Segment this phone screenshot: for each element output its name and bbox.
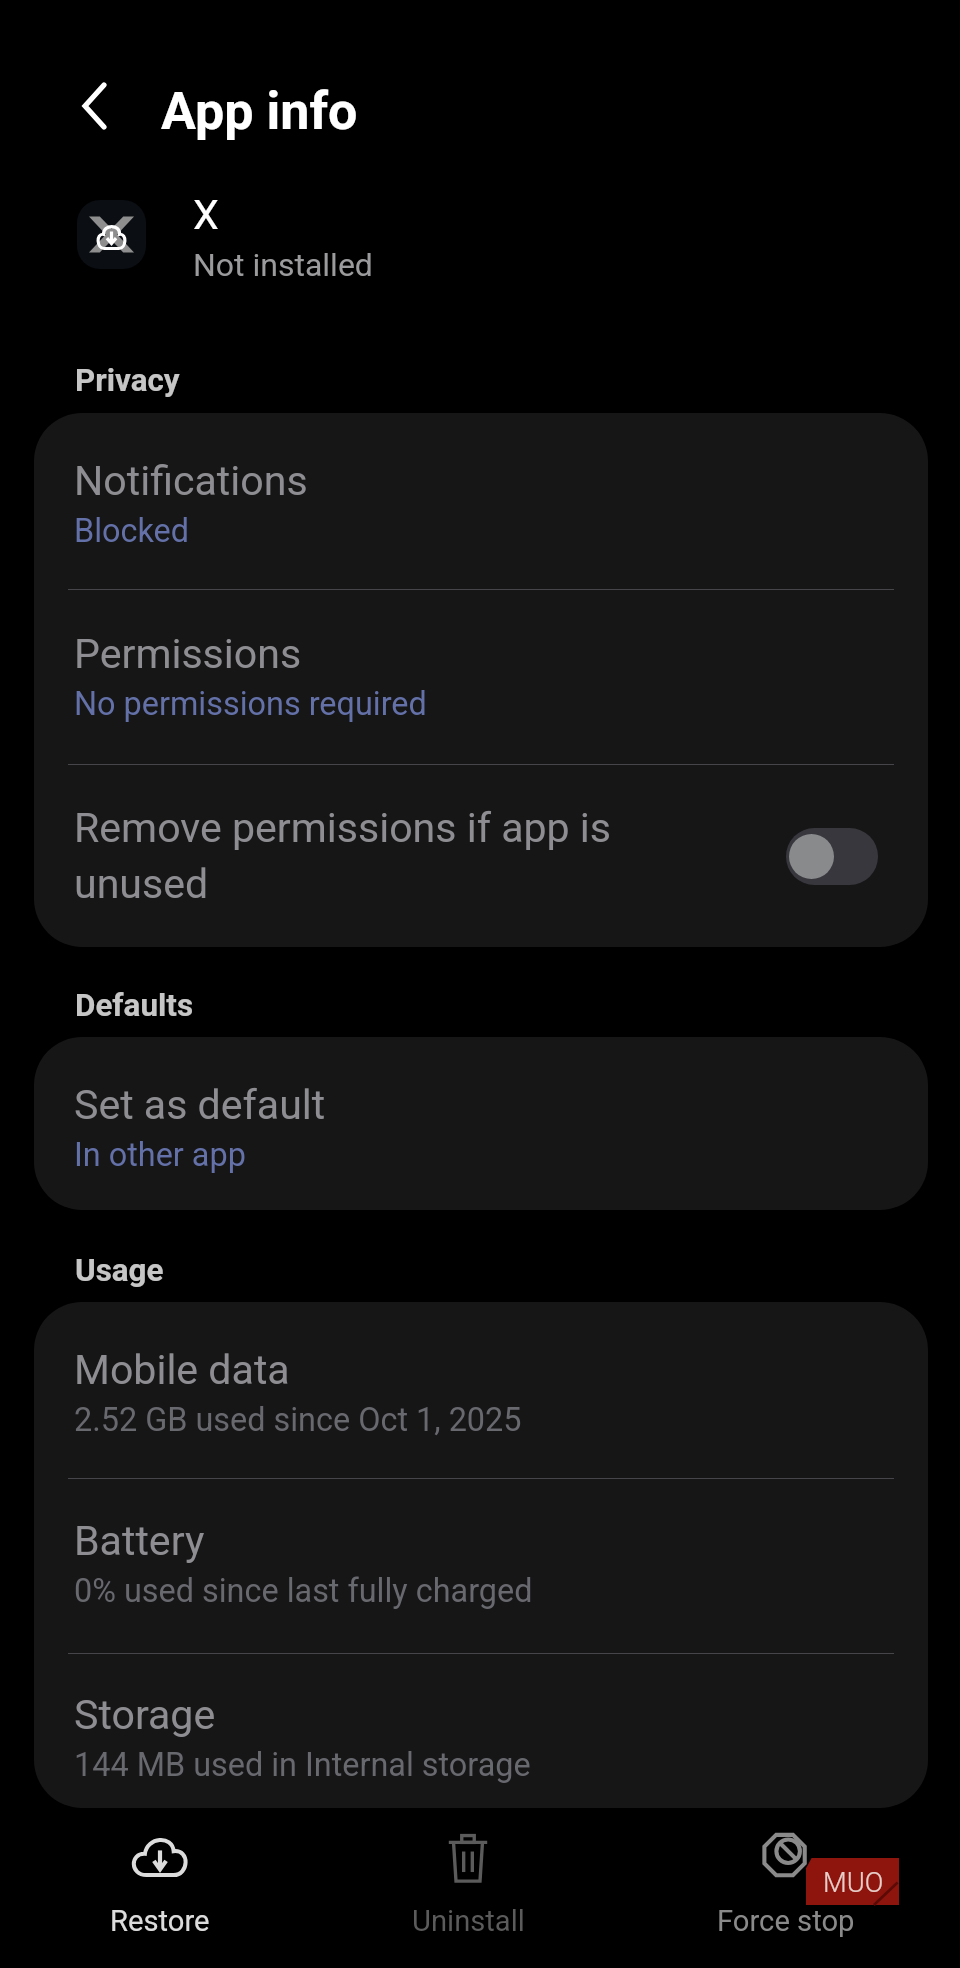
staticText: Privacy — [75, 362, 180, 399]
staticText: Battery — [74, 1517, 205, 1565]
button[interactable]: Force stop — [666, 1804, 906, 1924]
button[interactable]: Back — [54, 66, 134, 146]
staticText: Storage — [74, 1691, 216, 1739]
staticText: Remove permissions if app is unused — [74, 804, 690, 908]
staticText: X — [193, 191, 219, 239]
staticText: Blocked — [74, 512, 190, 550]
staticText: Force stop — [717, 1904, 855, 1938]
button[interactable]: Uninstall — [348, 1803, 588, 1923]
staticText: Set as default — [74, 1081, 326, 1129]
staticText: 2.52 GB used since Oct 1, 2025 — [74, 1401, 522, 1439]
staticText: Usage — [75, 1252, 164, 1289]
staticText: Defaults — [75, 987, 194, 1024]
staticText: Not installed — [193, 246, 373, 284]
button[interactable]: Notifications — [34, 413, 928, 589]
button[interactable]: Set as default — [34, 1037, 928, 1210]
button[interactable]: Restore — [40, 1811, 280, 1931]
staticText: In other app — [74, 1136, 246, 1174]
staticText: App info — [161, 81, 358, 142]
staticText: Uninstall — [412, 1904, 525, 1938]
staticText: Mobile data — [74, 1346, 290, 1394]
staticText: Restore — [110, 1904, 210, 1938]
button[interactable]: Remove permissions if app is unused — [34, 765, 928, 947]
staticText: 144 MB used in Internal storage — [74, 1746, 531, 1784]
staticText: Notifications — [74, 457, 308, 505]
staticText: 0% used since last fully charged — [74, 1572, 533, 1610]
staticText: Permissions — [74, 630, 302, 678]
button[interactable]: Mobile data — [34, 1302, 928, 1478]
button[interactable]: Storage — [34, 1654, 928, 1808]
button[interactable]: Battery — [34, 1479, 928, 1653]
staticText: MUO — [823, 1867, 884, 1899]
button[interactable]: Permissions — [34, 590, 928, 764]
staticText: No permissions required — [74, 685, 427, 723]
